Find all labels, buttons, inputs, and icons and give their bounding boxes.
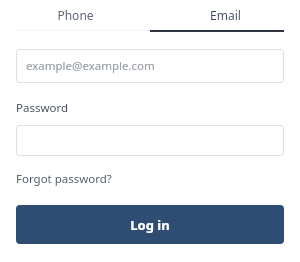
button[interactable]: Password field	[16, 125, 284, 156]
staticText: Forgot password?	[16, 171, 112, 187]
staticText: Email	[210, 7, 241, 23]
button[interactable]: Email	[150, 0, 300, 30]
button[interactable]: Log in	[16, 205, 284, 244]
staticText: example@example.com	[26, 58, 155, 74]
button[interactable]: Phone	[0, 0, 150, 30]
button[interactable]: example@example.com	[16, 49, 284, 83]
staticText: Log in	[130, 216, 170, 234]
staticText: Password	[16, 100, 69, 116]
staticText: Phone	[57, 7, 94, 23]
button[interactable]: Forgot password?	[16, 171, 112, 187]
